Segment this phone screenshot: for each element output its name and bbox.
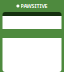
staticText: PAWSITIVE <box>21 2 48 10</box>
